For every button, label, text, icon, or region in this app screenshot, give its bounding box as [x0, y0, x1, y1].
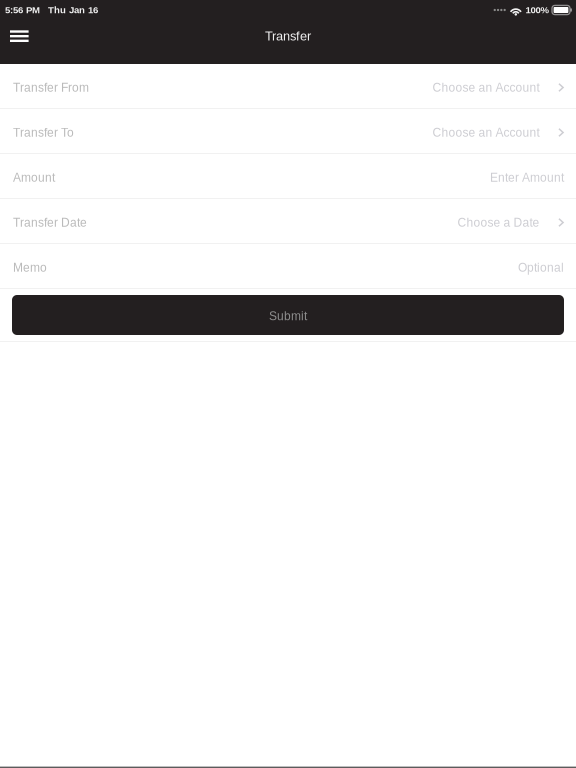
staticText: Transfer To — [13, 126, 74, 139]
staticText: Submit — [269, 309, 307, 323]
staticText: 5:56 PM — [5, 5, 40, 15]
staticText: Transfer Date — [13, 216, 87, 229]
staticText: Choose an Account — [433, 126, 540, 139]
staticText: Transfer — [265, 29, 311, 43]
staticText: Optional — [518, 261, 564, 274]
staticText: Amount — [13, 171, 55, 184]
button[interactable]: Memo — [0, 244, 576, 289]
button[interactable]: Menu — [0, 20, 41, 52]
button[interactable]: Transfer Date — [0, 199, 576, 244]
button[interactable]: Transfer To — [0, 109, 576, 154]
button[interactable]: Transfer From — [0, 64, 576, 109]
staticText: Choose an Account — [433, 81, 540, 94]
button[interactable]: Submit — [12, 295, 564, 335]
staticText: 100% — [525, 5, 549, 15]
staticText: Enter Amount — [490, 171, 564, 184]
staticText: Transfer From — [13, 81, 89, 94]
staticText: Choose a Date — [458, 216, 540, 229]
staticText: Memo — [13, 261, 47, 274]
button[interactable]: Amount — [0, 154, 576, 199]
staticText: Thu Jan 16 — [48, 5, 98, 15]
